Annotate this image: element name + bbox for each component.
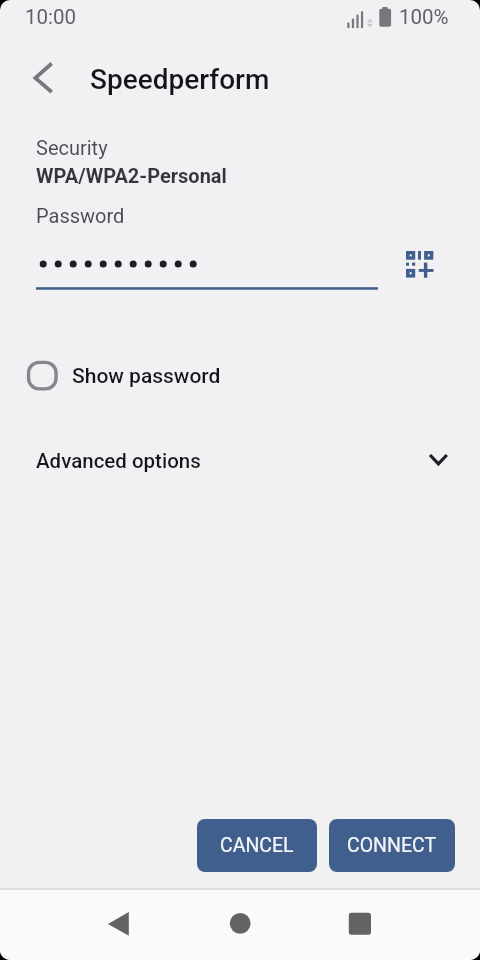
staticText: Show password <box>72 364 221 389</box>
staticText: Password <box>36 204 125 227</box>
button[interactable]: Recent apps <box>336 894 384 942</box>
staticText: 100% <box>399 5 449 29</box>
button[interactable]: Home <box>216 894 264 942</box>
button[interactable]: Back <box>94 894 142 942</box>
staticText: Advanced options <box>36 449 201 473</box>
button[interactable]: CONNECT <box>329 819 455 872</box>
button[interactable]: CANCEL <box>197 819 317 872</box>
staticText: CANCEL <box>220 834 294 857</box>
staticText: Speedperform <box>90 63 270 96</box>
button[interactable]: Advanced options <box>20 436 460 486</box>
staticText: 10:00 <box>25 5 77 29</box>
staticText: CONNECT <box>347 834 437 857</box>
button[interactable]: Password field <box>36 250 378 290</box>
button[interactable]: Show password <box>20 352 280 400</box>
button[interactable]: Back <box>19 54 67 102</box>
staticText: WPA/WPA2-Personal <box>36 164 227 187</box>
button[interactable]: Scan QR code <box>398 242 442 286</box>
staticText: Security <box>36 136 108 159</box>
